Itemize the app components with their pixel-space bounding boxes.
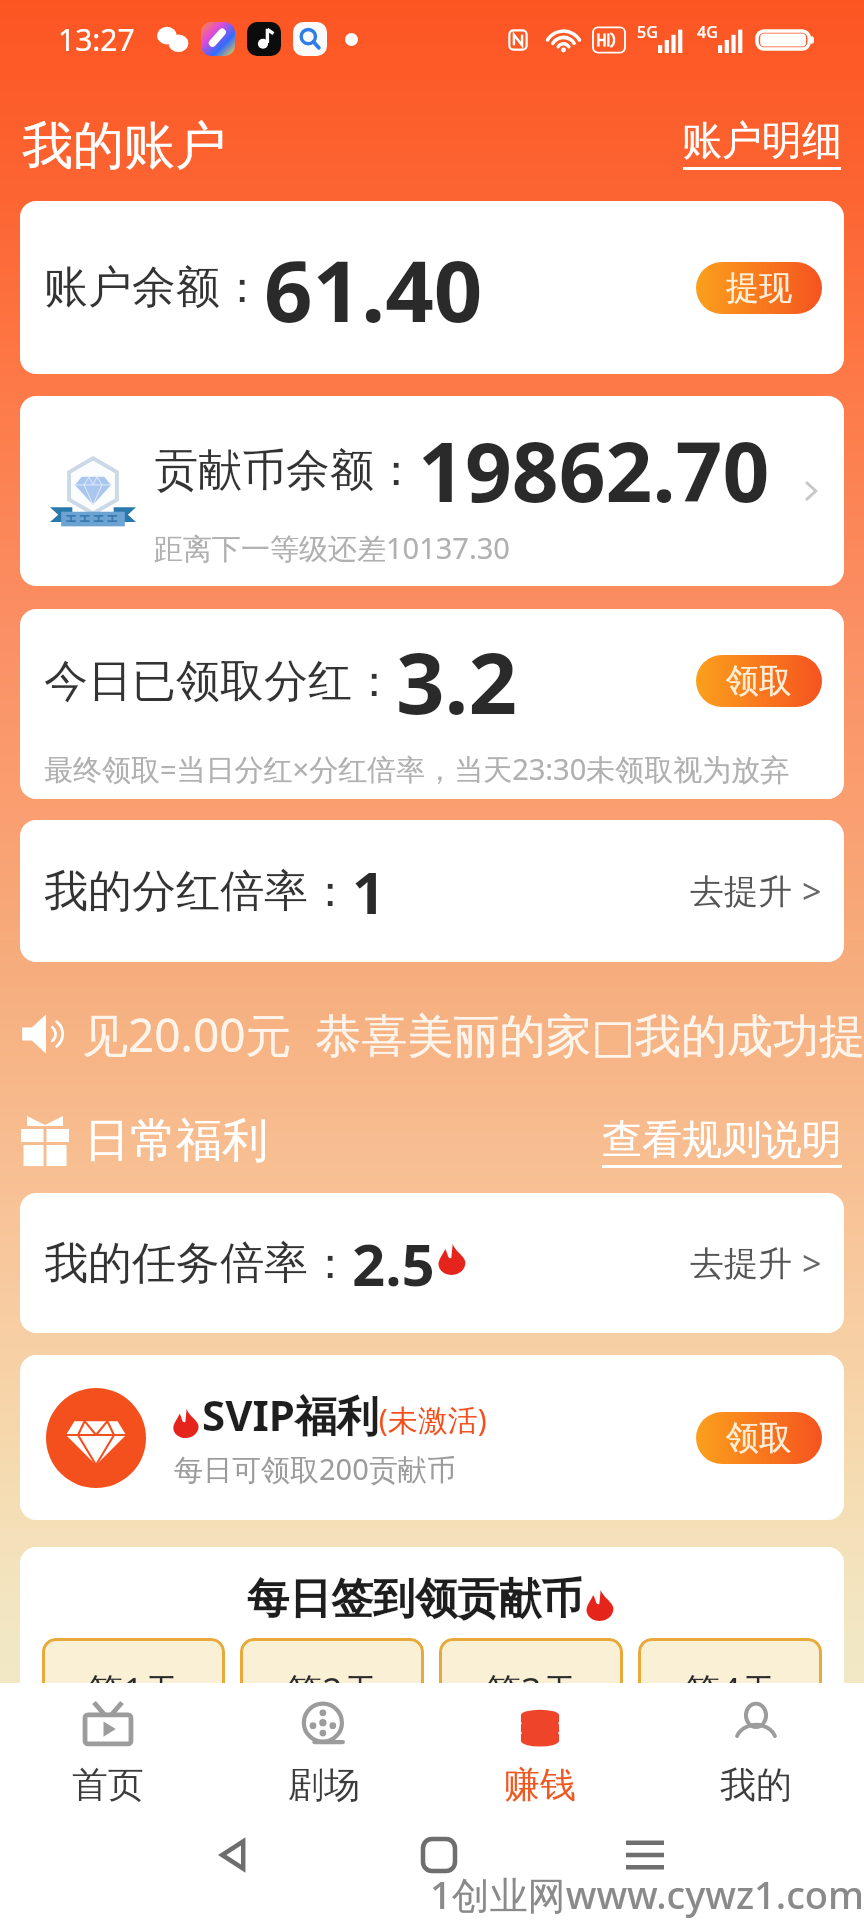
staticText: 提现 <box>726 267 792 309</box>
button[interactable]: Recents <box>617 1827 673 1883</box>
button[interactable]: 查看规则说明 <box>602 1114 842 1168</box>
staticText: 第4天 <box>684 1666 777 1715</box>
button[interactable]: 我的 <box>648 1683 864 1820</box>
staticText: 账户余额： <box>44 260 264 315</box>
staticText: 领取 <box>726 1417 792 1459</box>
button[interactable]: 剧场 <box>216 1683 432 1820</box>
button[interactable]: 第1天 <box>42 1638 225 1747</box>
button[interactable]: 赚钱 <box>432 1683 648 1820</box>
button[interactable]: 领取 <box>696 655 822 707</box>
staticText: 第2天 <box>286 1666 379 1715</box>
button[interactable]: 领取 <box>696 1412 822 1464</box>
staticText: 每日可领取200贡献币 <box>174 1449 456 1489</box>
staticText: 贡献币余额： <box>154 443 418 498</box>
staticText: 我的账户 <box>22 114 226 178</box>
staticText: 今日已领取分红： <box>44 654 396 709</box>
button[interactable]: 账户明细 <box>682 115 842 170</box>
staticText: SVIP福利(未激活) <box>202 1386 487 1443</box>
staticText: 账户明细 <box>682 115 842 165</box>
staticText: 5G <box>637 21 658 43</box>
staticText: 去提升 <box>690 1242 792 1285</box>
staticText: 见20.00元 恭喜美丽的家□我的成功提 <box>82 1003 864 1066</box>
button[interactable]: 每日签到领贡献币 <box>20 1547 844 1747</box>
staticText: 3.2 <box>396 623 518 739</box>
button[interactable]: 今日已领取分红： <box>20 609 844 799</box>
button[interactable]: Home <box>411 1827 467 1883</box>
button[interactable]: 我的分红倍率： <box>20 820 844 962</box>
staticText: 去提升 <box>690 870 792 913</box>
staticText: 我的分红倍率： <box>44 864 352 919</box>
staticText: 剧场 <box>288 1762 360 1807</box>
staticText: 我的 <box>720 1762 792 1807</box>
staticText: 2.5 <box>352 1224 435 1303</box>
staticText: 首页 <box>72 1762 144 1807</box>
staticText: 距离下一等级还差10137.30 <box>154 528 510 568</box>
staticText: 领取 <box>726 660 792 702</box>
staticText: 赚钱 <box>504 1762 576 1807</box>
button[interactable]: 第2天 <box>240 1638 424 1747</box>
staticText: 4G <box>697 21 718 43</box>
button[interactable]: 去提升 <box>690 1240 822 1286</box>
staticText: 19862.70 <box>418 414 770 526</box>
staticText: > <box>802 1240 822 1286</box>
staticText: 1创业网www.cywz1.com <box>430 1868 864 1920</box>
staticText: 每日签到领贡献币 <box>247 1573 583 1626</box>
button[interactable]: 我的任务倍率： <box>20 1193 844 1333</box>
staticText: 第3天 <box>485 1666 578 1715</box>
staticText: 我的任务倍率： <box>44 1236 352 1291</box>
staticText: 13:27 <box>58 19 135 60</box>
button[interactable]: SVIP福利(未激活) <box>20 1355 844 1520</box>
button[interactable]: 账户余额： <box>20 201 844 374</box>
button[interactable]: Back <box>205 1827 261 1883</box>
staticText: > <box>802 868 822 914</box>
button[interactable]: 提现 <box>696 262 822 314</box>
staticText: 第1天 <box>87 1666 180 1715</box>
button[interactable]: 首页 <box>0 1683 216 1820</box>
button[interactable]: 第4天 <box>638 1638 822 1747</box>
staticText: 61.40 <box>264 231 483 347</box>
button[interactable]: 去提升 <box>690 868 822 914</box>
staticText: 最终领取=当日分红×分红倍率，当天23:30未领取视为放弃 <box>44 749 790 789</box>
staticText: 1 <box>352 852 386 931</box>
staticText: 日常福利 <box>84 1112 268 1170</box>
button[interactable]: 贡献币余额： <box>20 396 844 586</box>
staticText: 查看规则说明 <box>602 1114 842 1164</box>
button[interactable]: 第3天 <box>439 1638 623 1747</box>
